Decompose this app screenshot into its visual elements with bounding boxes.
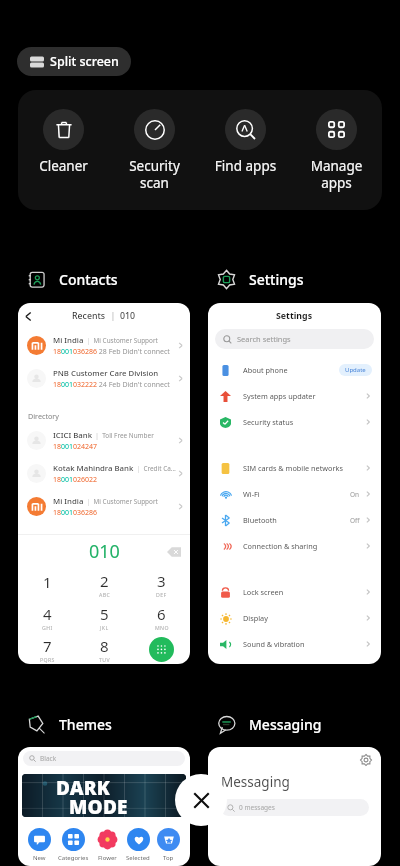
staticText: PNB Customer Care Division (53, 368, 159, 379)
button[interactable]: 8 (76, 634, 133, 664)
button[interactable]: Display (208, 605, 381, 631)
staticText: 2 (100, 571, 109, 591)
button[interactable]: Black (18, 747, 190, 866)
button[interactable]: Top (157, 828, 180, 862)
button[interactable]: Settings (359, 753, 373, 767)
staticText: PQRS (40, 656, 55, 663)
staticText: MODE (69, 794, 128, 817)
button[interactable]: Find apps (200, 109, 291, 175)
button[interactable]: System apps updater (208, 383, 381, 409)
button[interactable]: Flower (96, 828, 119, 862)
staticText: Sound & vibration (243, 639, 364, 649)
button[interactable]: 0 messages (220, 799, 369, 816)
staticText: Black (40, 754, 57, 763)
button[interactable]: Dialpad (149, 637, 174, 662)
staticText: JKL (100, 624, 109, 631)
staticText: 18001032222 24 Feb Didn't connect (53, 380, 170, 390)
staticText: ICICI Bank | Toll Free Number (53, 430, 154, 441)
staticText: Search settings (237, 334, 291, 344)
staticText: Lock screen (243, 587, 364, 597)
button[interactable]: PNB Customer Care Division (18, 362, 190, 395)
staticText: DEF (156, 591, 167, 598)
button[interactable]: Close (175, 774, 227, 826)
button[interactable]: SIM cards & mobile networks (208, 455, 381, 481)
staticText: Selected (126, 854, 150, 862)
button[interactable]: 4 (18, 601, 76, 634)
button[interactable]: ICICI Bank | Toll Free Number (18, 424, 190, 457)
staticText: Split screen (50, 53, 119, 70)
staticText: TUV (99, 656, 110, 663)
button[interactable]: About phone (208, 357, 381, 383)
button[interactable]: Wi-Fi (208, 481, 381, 507)
button[interactable]: New (28, 828, 51, 862)
staticText: 0 messages (239, 803, 275, 812)
staticText: Off (350, 516, 360, 525)
staticText: System apps updater (243, 391, 364, 401)
staticText: Kotak Mahindra Bank | Credit Card/... (53, 463, 176, 474)
button[interactable]: Cleaner (18, 109, 109, 175)
staticText: Security status (243, 417, 364, 427)
staticText: 8 (100, 636, 109, 656)
button[interactable]: 2 (76, 568, 133, 601)
staticText: MNO (155, 624, 169, 631)
staticText: Display (243, 613, 364, 623)
staticText: New (33, 854, 46, 862)
button[interactable]: Settings (208, 303, 381, 664)
staticText: 18001036286 28 Feb Didn't connect (53, 347, 170, 357)
staticText: Contacts (59, 270, 118, 289)
button[interactable]: Security scan (109, 109, 200, 192)
button[interactable]: Back (18, 306, 38, 326)
button[interactable]: Kotak Mahindra Bank | Credit Card/... (18, 457, 190, 490)
staticText: About phone (243, 365, 339, 375)
button[interactable]: 7 (18, 634, 76, 664)
staticText: Security scan (109, 157, 200, 192)
staticText: Settings (249, 270, 304, 289)
button[interactable]: Categories (58, 828, 89, 862)
staticText: Messaging (221, 773, 290, 791)
button[interactable]: Lock screen (208, 579, 381, 605)
button[interactable]: Black (23, 751, 185, 766)
button[interactable]: Security status (208, 409, 381, 435)
staticText: 010 (89, 539, 120, 564)
staticText: 18001024247 (53, 442, 98, 452)
staticText: Bluetooth (243, 515, 350, 525)
button[interactable]: Selected (126, 828, 150, 862)
staticText: Update (345, 366, 366, 374)
button[interactable]: Connection & sharing (208, 533, 381, 559)
button[interactable]: Search settings (215, 329, 374, 349)
staticText: On (350, 490, 360, 499)
staticText: 3 (157, 571, 166, 591)
button[interactable]: 3 (133, 568, 190, 601)
button[interactable]: Split screen (17, 47, 131, 76)
staticText: 18001026022 (53, 475, 98, 485)
staticText: Cleaner (18, 157, 109, 175)
button[interactable]: 6 (133, 601, 190, 634)
staticText: Mi India | Mi Customer Support (53, 496, 158, 507)
button[interactable]: Sound & vibration (208, 631, 381, 657)
staticText: Find apps (200, 157, 291, 175)
staticText: Categories (58, 854, 89, 862)
staticText: Flower (98, 854, 117, 862)
button[interactable]: 5 (76, 601, 133, 634)
staticText: Directory (28, 411, 60, 421)
staticText: ABC (99, 591, 111, 598)
staticText: 7 (43, 636, 52, 656)
button[interactable]: Back (18, 303, 190, 664)
button[interactable]: 1 (18, 568, 76, 601)
staticText: 4 (43, 604, 52, 624)
staticText: 010 (120, 310, 136, 322)
button[interactable]: Mi India | Mi Customer Support (18, 329, 190, 362)
staticText: SIM cards & mobile networks (243, 463, 364, 473)
staticText: GHI (42, 624, 53, 631)
staticText: Wi-Fi (243, 489, 350, 499)
button[interactable]: Settings (208, 747, 381, 866)
staticText: Manage apps (291, 157, 382, 192)
button[interactable]: Mi India | Mi Customer Support (18, 490, 190, 523)
staticText: DARK (56, 775, 111, 801)
staticText: Settings (276, 310, 313, 322)
staticText: Themes (59, 715, 112, 734)
staticText: | (106, 310, 120, 322)
button[interactable]: Manage apps (291, 109, 382, 192)
button[interactable]: Bluetooth (208, 507, 381, 533)
staticText: 1 (43, 572, 52, 592)
